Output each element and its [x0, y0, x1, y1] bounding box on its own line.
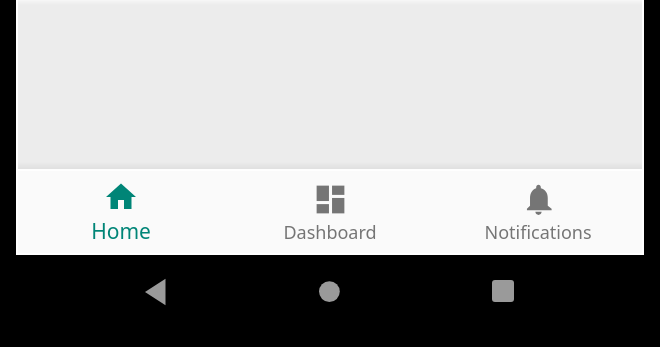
button[interactable]: Home: [17, 169, 225, 253]
button[interactable]: Dashboard: [226, 169, 434, 253]
staticText: Dashboard: [283, 220, 377, 245]
button[interactable]: Recent apps: [482, 268, 524, 314]
button[interactable]: Back: [134, 268, 176, 314]
staticText: Notifications: [484, 220, 592, 245]
staticText: Home: [91, 217, 151, 246]
button[interactable]: Notifications: [434, 169, 642, 253]
button[interactable]: Home: [308, 268, 350, 314]
